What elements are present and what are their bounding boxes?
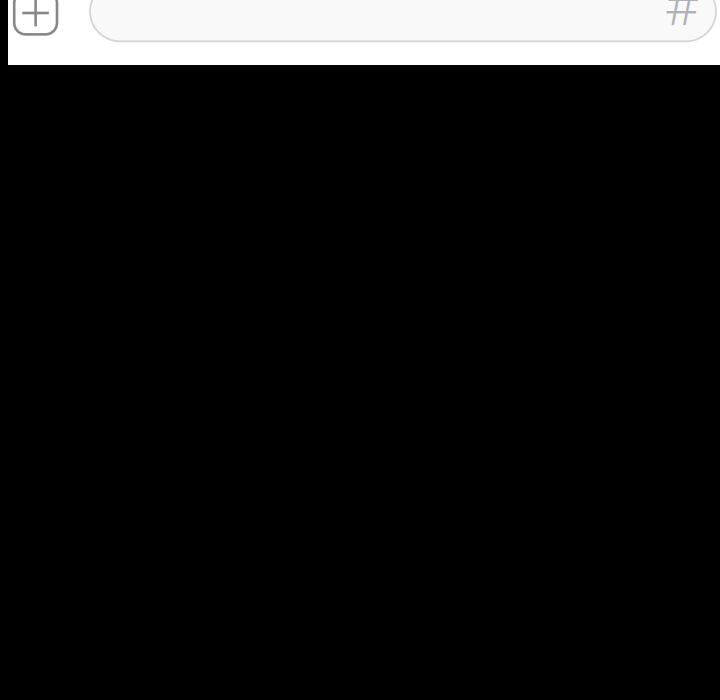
staticText: # <box>665 0 699 40</box>
button[interactable]: Add attachment <box>13 0 58 36</box>
button[interactable]: Message <box>89 0 717 49</box>
